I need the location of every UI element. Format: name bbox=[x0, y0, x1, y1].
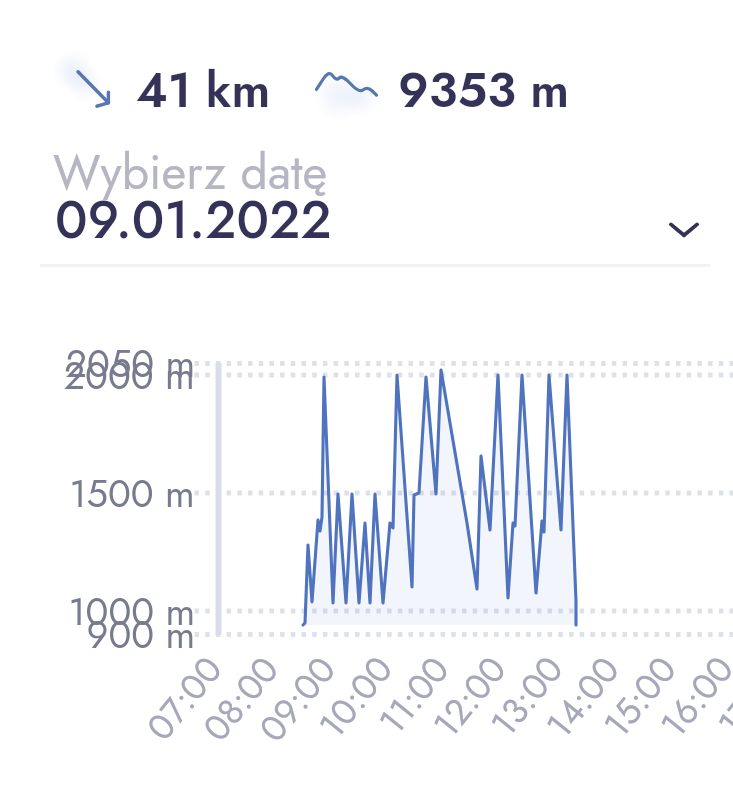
staticText: 41 km bbox=[136, 56, 271, 125]
other: Expand date picker bbox=[667, 212, 701, 246]
button[interactable]: Wybierz datę bbox=[0, 130, 733, 265]
other: Distance bbox=[56, 56, 118, 118]
staticText: Wybierz datę bbox=[53, 138, 328, 207]
other: Elevation gain bbox=[311, 60, 387, 136]
staticText: 9353 m bbox=[398, 56, 569, 125]
staticText: 09.01.2022 bbox=[55, 182, 332, 257]
